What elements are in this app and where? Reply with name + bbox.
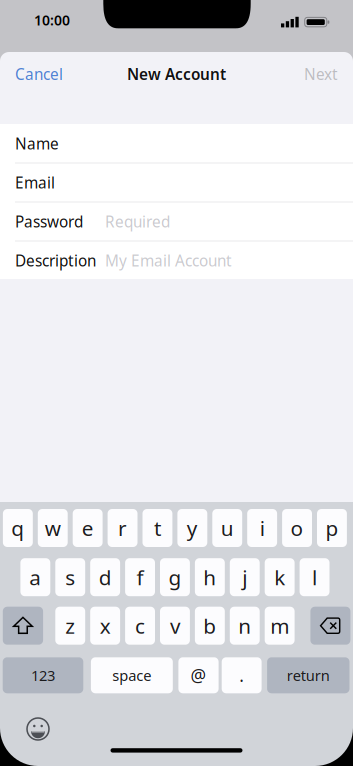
staticText: y — [187, 514, 198, 542]
button[interactable]: b — [195, 607, 225, 645]
staticText: u — [221, 514, 234, 542]
button[interactable]: e — [73, 509, 103, 547]
staticText: Password — [15, 211, 83, 232]
staticText: d — [99, 563, 112, 591]
staticText: r — [118, 514, 127, 542]
button[interactable]: h — [195, 558, 225, 596]
staticText: s — [65, 563, 75, 591]
staticText: t — [154, 514, 161, 542]
staticText: k — [274, 563, 285, 591]
button[interactable]: z — [55, 607, 85, 645]
staticText: c — [135, 612, 145, 640]
staticText: Name — [15, 133, 59, 154]
button[interactable]: s — [55, 558, 85, 596]
staticText: e — [82, 514, 94, 542]
button[interactable]: g — [160, 558, 190, 596]
button[interactable]: y — [177, 509, 207, 547]
staticText: space — [112, 665, 151, 685]
button[interactable]: c — [125, 607, 155, 645]
button[interactable]: f — [125, 558, 155, 596]
staticText: n — [238, 612, 251, 640]
button[interactable]: u — [212, 509, 242, 547]
staticText: o — [290, 514, 303, 542]
staticText: a — [29, 563, 41, 591]
button[interactable]: d — [90, 558, 120, 596]
staticText: Next — [304, 64, 338, 84]
staticText: Required — [105, 211, 170, 232]
button[interactable]: Name — [0, 124, 353, 163]
staticText: 10:00 — [34, 10, 70, 30]
button[interactable]: Shift — [3, 607, 43, 645]
staticText: p — [325, 514, 338, 542]
staticText: @ — [190, 663, 206, 687]
staticText: Email — [15, 172, 55, 193]
staticText: m — [270, 612, 289, 640]
button[interactable]: Emoji keyboard — [23, 714, 53, 744]
button[interactable]: Cancel — [15, 54, 79, 94]
button[interactable]: i — [247, 509, 277, 547]
button[interactable]: r — [108, 509, 137, 547]
staticText: l — [312, 563, 317, 591]
staticText: return — [287, 665, 330, 685]
staticText: f — [136, 563, 143, 591]
button[interactable]: Description — [0, 241, 353, 280]
button[interactable]: k — [265, 558, 295, 596]
button[interactable]: Password — [0, 202, 353, 241]
staticText: . — [239, 663, 244, 687]
button[interactable]: a — [20, 558, 50, 596]
button[interactable]: p — [317, 509, 347, 547]
button[interactable]: n — [230, 607, 260, 645]
button[interactable]: w — [38, 509, 68, 547]
staticText: i — [260, 514, 265, 542]
button[interactable]: v — [160, 607, 190, 645]
staticText: Description — [15, 250, 96, 271]
button[interactable]: Email — [0, 163, 353, 202]
button[interactable]: l — [300, 558, 329, 596]
button[interactable]: x — [90, 607, 120, 645]
staticText: b — [203, 612, 216, 640]
button[interactable]: m — [265, 607, 295, 645]
button[interactable]: t — [142, 509, 172, 547]
staticText: j — [242, 563, 247, 591]
button[interactable]: space — [91, 657, 173, 693]
button[interactable]: Next — [278, 54, 338, 94]
staticText: My Email Account — [105, 250, 232, 271]
staticText: z — [65, 612, 75, 640]
staticText: New Account — [127, 64, 226, 84]
staticText: Cancel — [15, 64, 63, 84]
staticText: q — [11, 514, 24, 542]
button[interactable]: @ — [178, 657, 219, 693]
staticText: 123 — [31, 665, 55, 685]
button[interactable]: 123 — [3, 657, 83, 693]
button[interactable]: Delete — [310, 607, 350, 645]
staticText: w — [45, 514, 61, 542]
button[interactable]: o — [282, 509, 312, 547]
staticText: h — [203, 563, 216, 591]
staticText: v — [170, 612, 180, 640]
button[interactable]: j — [230, 558, 260, 596]
button[interactable]: return — [267, 657, 349, 693]
staticText: x — [100, 612, 111, 640]
staticText: g — [168, 563, 181, 591]
button[interactable]: . — [222, 657, 262, 693]
button[interactable]: q — [3, 509, 33, 547]
